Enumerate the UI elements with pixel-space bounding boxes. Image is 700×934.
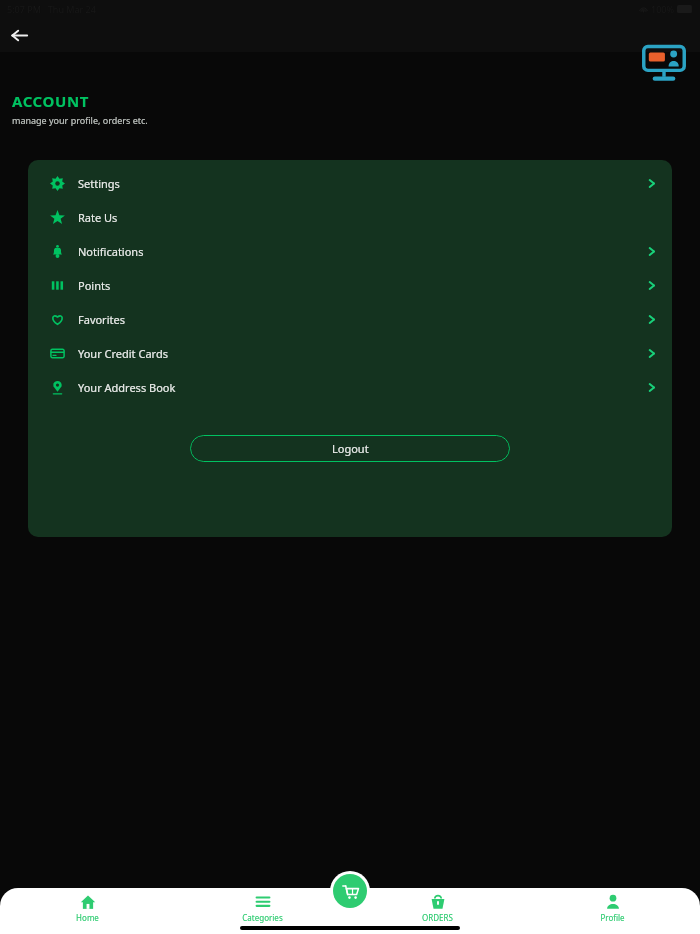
button[interactable]: Settings: [28, 166, 672, 200]
staticText: Points: [78, 278, 111, 293]
button[interactable]: Notifications: [28, 234, 672, 268]
button[interactable]: Your Address Book: [28, 370, 672, 404]
button[interactable]: Points: [28, 268, 672, 302]
button[interactable]: ORDERS: [350, 888, 525, 923]
staticText: Notifications: [78, 244, 144, 259]
button[interactable]: Home: [0, 888, 175, 923]
button[interactable]: Rate Us: [28, 200, 672, 234]
staticText: Categories: [242, 912, 283, 923]
button[interactable]: Profile: [525, 888, 700, 923]
staticText: Favorites: [78, 312, 125, 327]
button[interactable]: Categories: [175, 888, 350, 923]
staticText: Settings: [78, 176, 120, 191]
staticText: Your Credit Cards: [78, 346, 168, 361]
button[interactable]: Cart: [333, 874, 367, 908]
staticText: ORDERS: [422, 912, 453, 923]
staticText: Rate Us: [78, 210, 118, 225]
staticText: Profile: [600, 912, 625, 923]
button[interactable]: Logout: [190, 435, 510, 462]
staticText: Your Address Book: [78, 380, 176, 395]
staticText: Home: [76, 912, 99, 923]
staticText: Logout: [332, 441, 369, 456]
button[interactable]: Your Credit Cards: [28, 336, 672, 370]
button[interactable]: App logo: [638, 37, 690, 89]
button[interactable]: Back: [4, 20, 34, 50]
staticText: ACCOUNT: [12, 91, 89, 111]
staticText: manage your profile, orders etc.: [12, 114, 148, 126]
button[interactable]: Favorites: [28, 302, 672, 336]
